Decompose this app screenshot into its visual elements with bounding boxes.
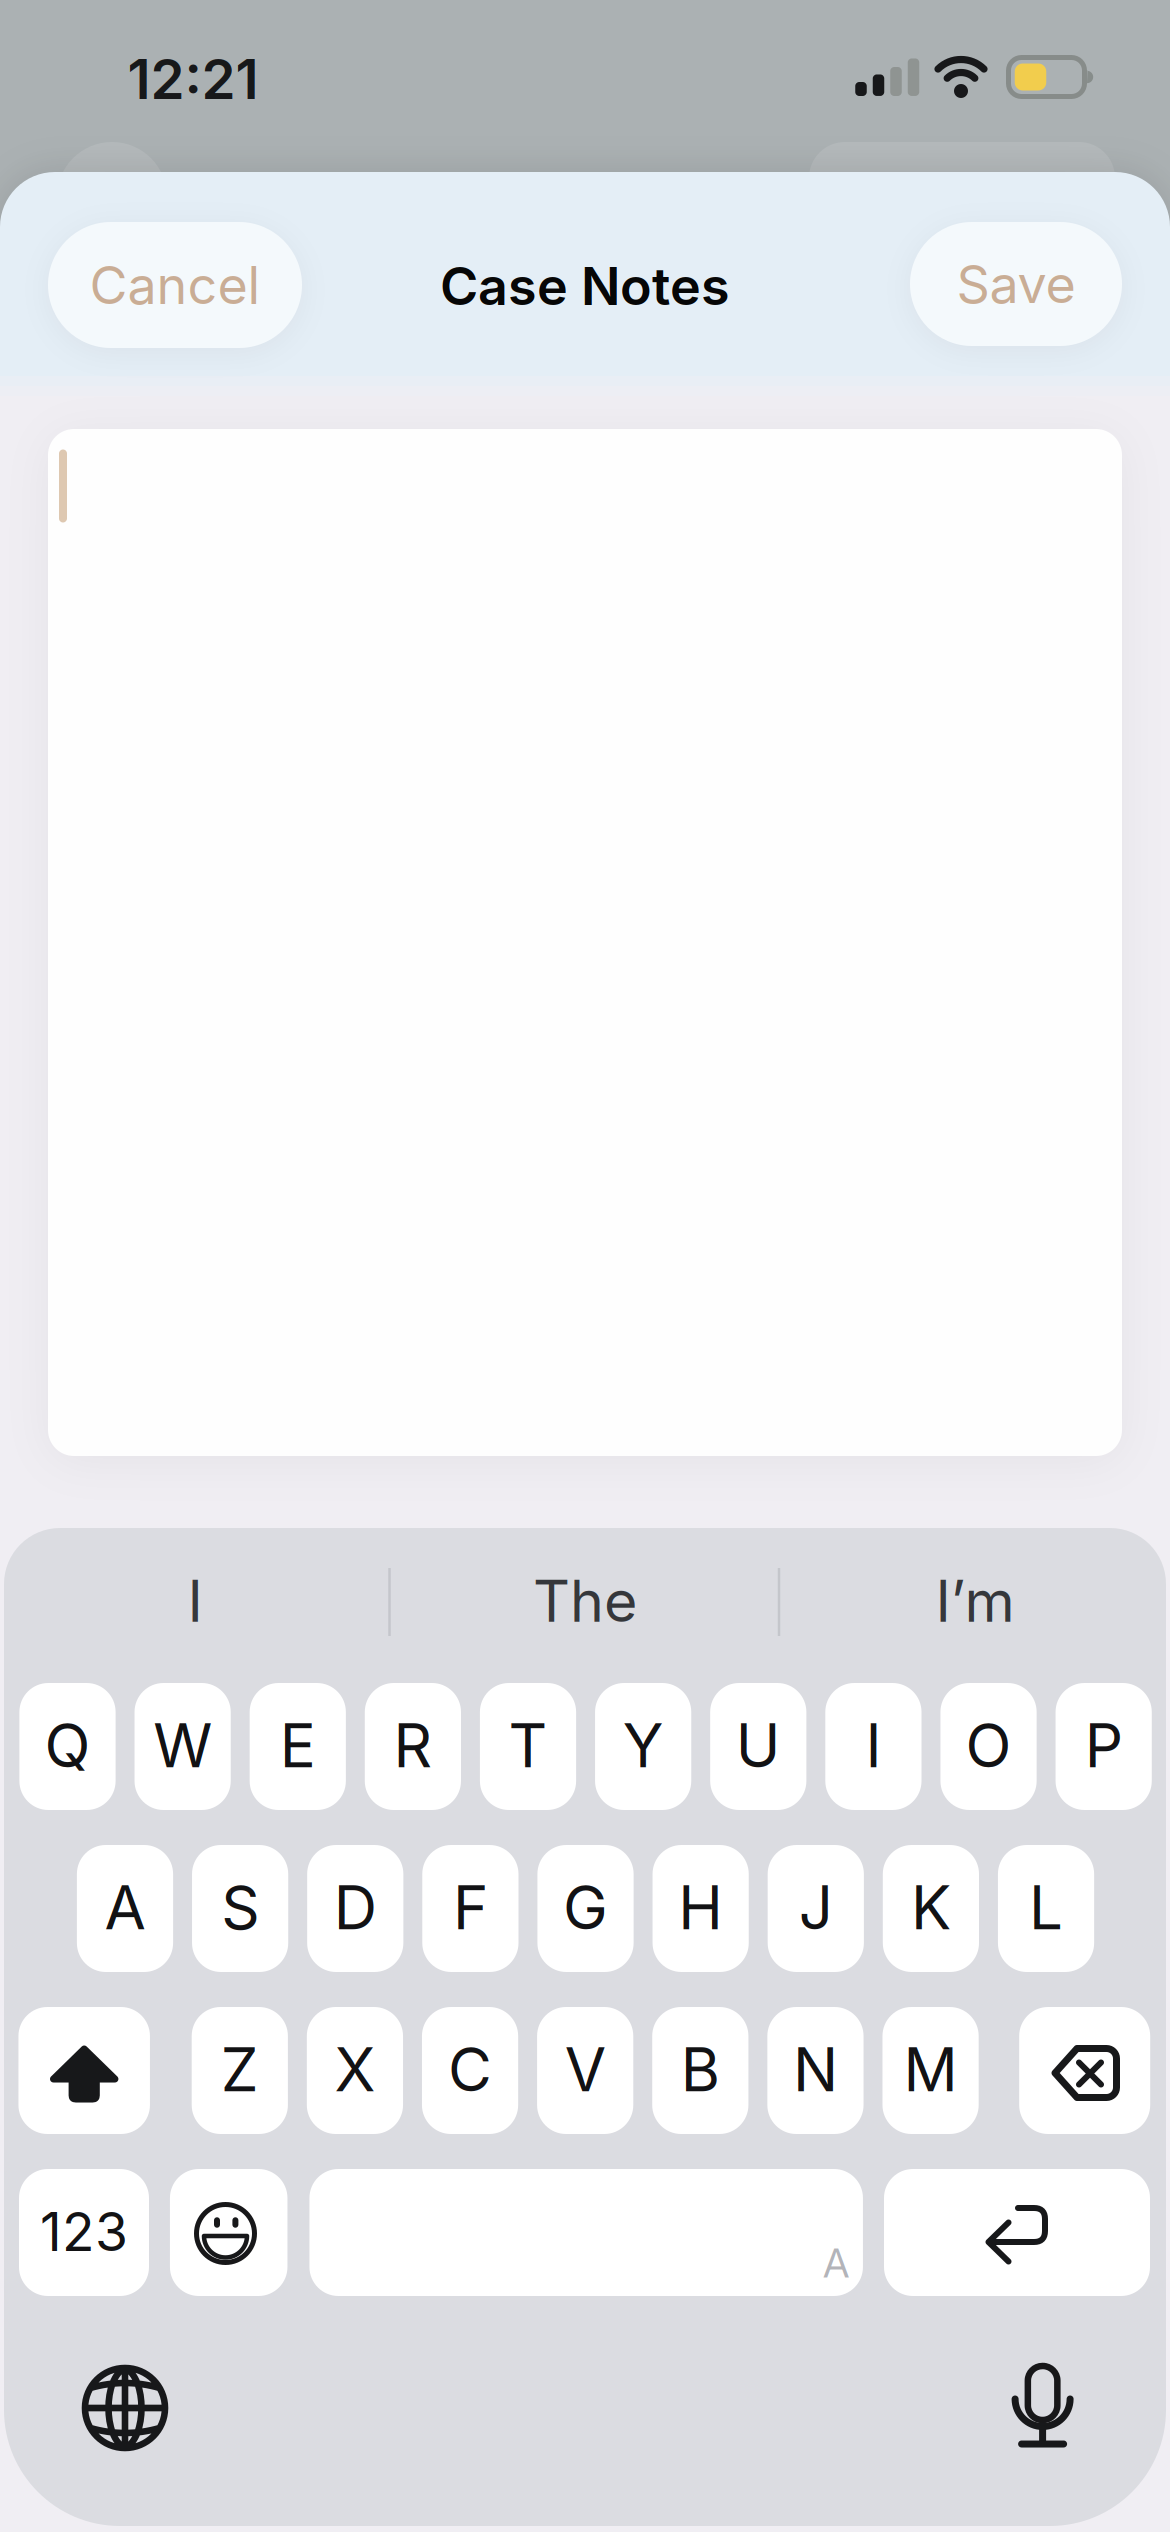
staticText: X [334, 2034, 375, 2105]
staticText: O [965, 1710, 1011, 1781]
button[interactable] [1019, 2007, 1150, 2134]
button[interactable]: X [307, 2007, 403, 2134]
staticText: 123 [40, 2200, 128, 2263]
staticText: G [563, 1872, 608, 1943]
button[interactable] [884, 2169, 1150, 2296]
button[interactable]: I [825, 1683, 921, 1810]
staticText: I’m [935, 1567, 1014, 1635]
staticText: J [799, 1872, 833, 1943]
staticText: Y [623, 1710, 664, 1781]
button[interactable]: N [767, 2007, 863, 2134]
button[interactable]: I [5, 1546, 385, 1656]
staticText: P [1085, 1710, 1123, 1781]
button[interactable]: 123 [19, 2169, 149, 2296]
button[interactable]: T [480, 1683, 576, 1810]
button[interactable]: H [652, 1845, 749, 1972]
button[interactable]: C [422, 2007, 518, 2134]
staticText: Z [221, 2034, 259, 2105]
button[interactable]: Q [19, 1683, 116, 1810]
staticText: R [393, 1710, 432, 1781]
staticText: The [533, 1567, 637, 1635]
button[interactable]: S [192, 1845, 288, 1972]
staticText: S [221, 1872, 259, 1943]
button[interactable]: J [768, 1845, 864, 1972]
button[interactable] [50, 2333, 200, 2483]
button[interactable]: V [537, 2007, 633, 2134]
staticText: V [565, 2034, 606, 2105]
button[interactable] [968, 2331, 1118, 2481]
button[interactable]: F [422, 1845, 518, 1972]
button[interactable]: D [307, 1845, 403, 1972]
button[interactable]: P [1056, 1683, 1152, 1810]
staticText: A [104, 1872, 145, 1943]
staticText: C [448, 2034, 492, 2105]
button[interactable]: I’m [785, 1546, 1165, 1656]
button[interactable]: Y [595, 1683, 691, 1810]
button[interactable] [170, 2169, 287, 2296]
staticText: I [187, 1567, 202, 1635]
staticText: E [280, 1710, 316, 1781]
button[interactable]: B [652, 2007, 748, 2134]
staticText: W [153, 1710, 212, 1781]
button[interactable]: R [365, 1683, 461, 1810]
button[interactable]: Save [910, 222, 1122, 346]
button[interactable]: G [537, 1845, 634, 1972]
button[interactable]: M [882, 2007, 979, 2134]
button[interactable]: A [77, 1845, 173, 1972]
button[interactable] [18, 2007, 150, 2134]
button[interactable]: The [395, 1546, 775, 1656]
button[interactable]: Cancel [48, 222, 302, 348]
staticText: T [508, 1710, 547, 1781]
staticText: Q [44, 1710, 90, 1781]
staticText: D [334, 1872, 377, 1943]
staticText: M [904, 2034, 958, 2105]
staticText: 12:21 [127, 47, 258, 111]
staticText: Save [956, 253, 1075, 315]
button[interactable]: W [134, 1683, 231, 1810]
button[interactable]: U [710, 1683, 806, 1810]
staticText: L [1029, 1872, 1063, 1943]
button[interactable]: K [883, 1845, 979, 1972]
staticText: I [865, 1710, 881, 1781]
button[interactable] [309, 2169, 863, 2296]
button[interactable]: E [250, 1683, 346, 1810]
staticText: N [793, 2034, 838, 2105]
staticText: F [453, 1872, 488, 1943]
staticText: Cancel [89, 254, 260, 316]
staticText: A [823, 2239, 849, 2287]
button[interactable]: Z [192, 2007, 288, 2134]
staticText: K [911, 1872, 951, 1943]
staticText: U [736, 1710, 781, 1781]
staticText: B [681, 2034, 720, 2105]
staticText: Case Notes [440, 255, 730, 317]
button[interactable]: L [998, 1845, 1094, 1972]
button[interactable]: O [940, 1683, 1037, 1810]
staticText: H [678, 1872, 723, 1943]
